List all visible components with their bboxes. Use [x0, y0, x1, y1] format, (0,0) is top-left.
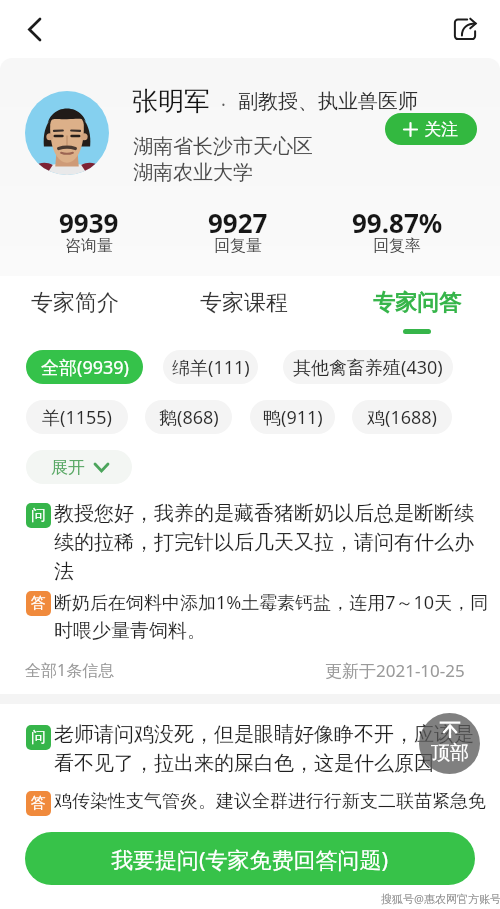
button[interactable]: 我要提问(专家免费回答问题): [25, 832, 475, 885]
staticText: 鸡传染性支气管炎。建议全群进行行新支二联苗紧急免: [54, 790, 486, 813]
button[interactable]: 关注: [385, 113, 477, 145]
button[interactable]: Back: [14, 9, 54, 49]
staticText: 湖南省长沙市天心区: [133, 134, 313, 159]
staticText: 鸭(911): [263, 405, 323, 430]
staticText: 教授您好，我养的是藏香猪断奶以后总是断断续: [54, 501, 474, 526]
staticText: 搜狐号@惠农网官方账号: [381, 891, 500, 906]
staticText: 鸡(1688): [367, 405, 437, 430]
button[interactable]: 鸡(1688): [352, 400, 452, 434]
staticText: 答: [31, 594, 46, 613]
staticText: 全部(9939): [41, 355, 129, 380]
staticText: 回复率: [373, 236, 421, 256]
staticText: 9939: [59, 205, 119, 240]
staticText: 鹅(868): [159, 405, 219, 430]
staticText: 看不见了，拉出来的屎白色，这是什么原因: [54, 751, 434, 776]
button[interactable]: 鸭(911): [250, 400, 335, 434]
button[interactable]: Share: [445, 9, 485, 49]
staticText: 专家课程: [200, 289, 288, 317]
staticText: 续的拉稀，打完针以后几天又拉，请问有什么办: [54, 530, 474, 555]
button[interactable]: 其他禽畜养殖(430): [283, 350, 453, 384]
button[interactable]: 专家简介: [5, 276, 145, 338]
button[interactable]: 羊(1155): [26, 400, 128, 434]
staticText: 羊(1155): [42, 405, 112, 430]
staticText: 副教授、执业兽医师: [238, 89, 418, 114]
staticText: 展开: [51, 457, 85, 478]
staticText: 其他禽畜养殖(430): [293, 355, 443, 380]
button[interactable]: Back to top: [419, 713, 480, 774]
staticText: 回复量: [214, 236, 262, 256]
staticText: 关注: [424, 119, 458, 140]
staticText: 断奶后在饲料中添加1%土霉素钙盐，连用7～10天，同: [54, 590, 489, 615]
staticText: 法: [54, 559, 74, 584]
staticText: 湖南农业大学: [133, 160, 253, 185]
staticText: 咨询量: [65, 236, 113, 256]
button[interactable]: 专家问答: [347, 276, 487, 338]
staticText: 问: [31, 728, 46, 747]
button[interactable]: 鹅(868): [145, 400, 232, 434]
staticText: 9927: [208, 205, 268, 240]
staticText: 顶部: [431, 741, 469, 765]
staticText: 问: [31, 506, 46, 525]
staticText: 更新于2021-10-25: [325, 659, 465, 682]
staticText: 老师请问鸡没死，但是眼睛好像睁不开，应该是: [54, 722, 474, 747]
staticText: 99.87%: [352, 205, 443, 240]
staticText: 张明军: [132, 85, 210, 118]
staticText: 专家简介: [31, 289, 119, 317]
button[interactable]: 绵羊(111): [163, 350, 258, 384]
staticText: 答: [31, 794, 46, 813]
staticText: ·: [221, 92, 226, 117]
staticText: 全部1条信息: [25, 659, 115, 681]
staticText: 时喂少量青饲料。: [54, 619, 206, 643]
staticText: 我要提问(专家免费回答问题): [111, 844, 389, 874]
button[interactable]: 展开: [26, 450, 132, 484]
staticText: 专家问答: [373, 289, 461, 317]
staticText: 绵羊(111): [172, 355, 250, 380]
button[interactable]: 全部(9939): [26, 350, 143, 384]
button[interactable]: 专家课程: [174, 276, 314, 338]
